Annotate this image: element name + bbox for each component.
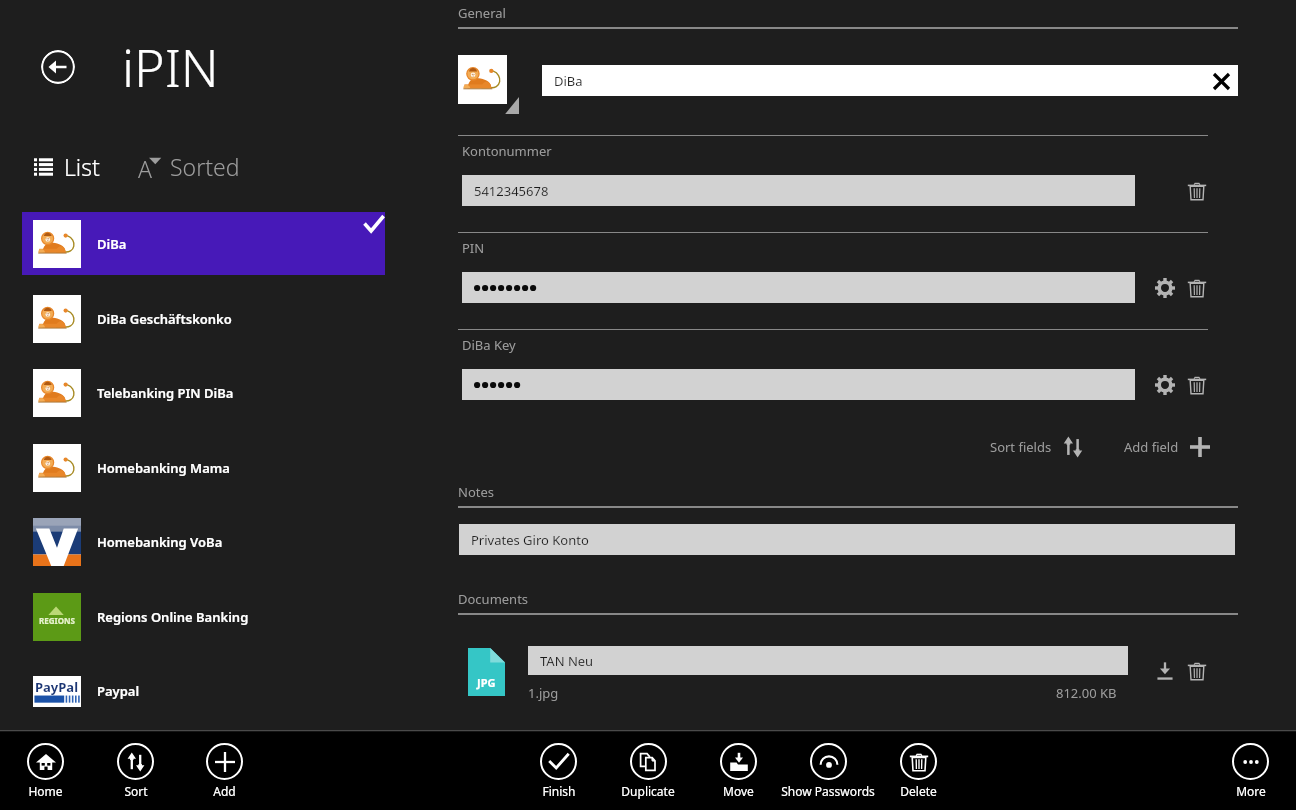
button[interactable]: Clear [1207, 67, 1235, 95]
button[interactable]: Delete field [1184, 275, 1210, 301]
staticText: More [1236, 783, 1266, 799]
staticText: 5412345678 [474, 182, 549, 200]
staticText: Documents [458, 590, 529, 608]
button[interactable]: List [34, 151, 100, 182]
button[interactable]: A [138, 151, 240, 182]
button[interactable]: Move [678, 732, 798, 810]
button[interactable]: Sort fields [990, 436, 1084, 458]
staticText: Finish [542, 783, 576, 799]
button[interactable]: Sort [75, 732, 195, 810]
staticText: DiBa Geschäftskonko [97, 310, 232, 328]
staticText: PIN [462, 239, 485, 257]
button[interactable]: Add field [1124, 436, 1211, 458]
button[interactable]: Settings [1152, 275, 1178, 301]
staticText: TAN Neu [540, 652, 594, 670]
button[interactable]: Back [41, 50, 75, 84]
button[interactable]: DiBa [542, 65, 1238, 96]
button[interactable]: 5412345678 [462, 175, 1135, 206]
button[interactable]: PayPal [22, 659, 385, 722]
button[interactable]: Duplicate [588, 732, 708, 810]
staticText: Homebanking VoBa [97, 533, 223, 551]
button[interactable]: Show Passwords [768, 732, 888, 810]
staticText: Delete [900, 783, 937, 799]
staticText: General [458, 4, 506, 22]
button[interactable]: Settings [1152, 372, 1178, 398]
button[interactable]: Change icon [458, 55, 507, 104]
button[interactable]: Homebanking Mama [22, 436, 385, 499]
button[interactable] [462, 369, 1135, 400]
staticText: Regions Online Banking [97, 608, 249, 626]
staticText: 1.jpg [528, 684, 559, 702]
button[interactable]: DiBa Geschäftskonko [22, 287, 385, 350]
staticText: Homebanking Mama [97, 459, 230, 477]
staticText: Notes [458, 483, 494, 501]
staticText: REGIONS [39, 615, 75, 626]
staticText: 812.00 KB [1056, 684, 1117, 702]
staticText: Add field [1124, 438, 1179, 456]
staticText: Sort [124, 783, 148, 799]
staticText: DiBa [97, 235, 127, 253]
staticText: Sort fields [990, 438, 1052, 456]
button[interactable]: More [1190, 732, 1296, 810]
staticText: DiBa [554, 72, 583, 90]
button[interactable]: DiBa [22, 212, 385, 275]
staticText: DiBa Key [462, 336, 516, 354]
staticText: Kontonummer [462, 142, 552, 160]
button[interactable]: Delete [858, 732, 978, 810]
staticText: List [64, 151, 100, 182]
button[interactable]: Delete field [1184, 372, 1210, 398]
staticText: Sorted [170, 151, 240, 182]
button[interactable]: Telebanking PIN DiBa [22, 361, 385, 424]
button[interactable]: Finish [498, 732, 618, 810]
button[interactable]: Add [164, 732, 284, 810]
staticText: A [138, 153, 152, 181]
staticText: Paypal [97, 682, 140, 700]
button[interactable] [462, 272, 1135, 303]
button[interactable]: REGIONS [22, 585, 385, 648]
staticText: Add [213, 783, 236, 799]
staticText: PayPal [35, 678, 79, 696]
staticText: Home [28, 783, 63, 799]
staticText: Show Passwords [781, 783, 875, 799]
button[interactable]: Homebanking VoBa [22, 510, 385, 573]
button[interactable]: Privates Giro Konto [459, 524, 1235, 555]
button[interactable]: Home [0, 732, 105, 810]
staticText: Move [723, 783, 754, 799]
staticText: Telebanking PIN DiBa [97, 384, 234, 402]
button[interactable]: Download [1152, 658, 1178, 684]
button[interactable]: TAN Neu [528, 646, 1128, 675]
staticText: iPIN [122, 31, 219, 102]
staticText: JPG [477, 675, 496, 690]
staticText: Duplicate [621, 783, 675, 799]
staticText: Privates Giro Konto [471, 531, 589, 549]
button[interactable]: Delete field [1184, 178, 1210, 204]
button[interactable]: Delete document [1184, 658, 1210, 684]
